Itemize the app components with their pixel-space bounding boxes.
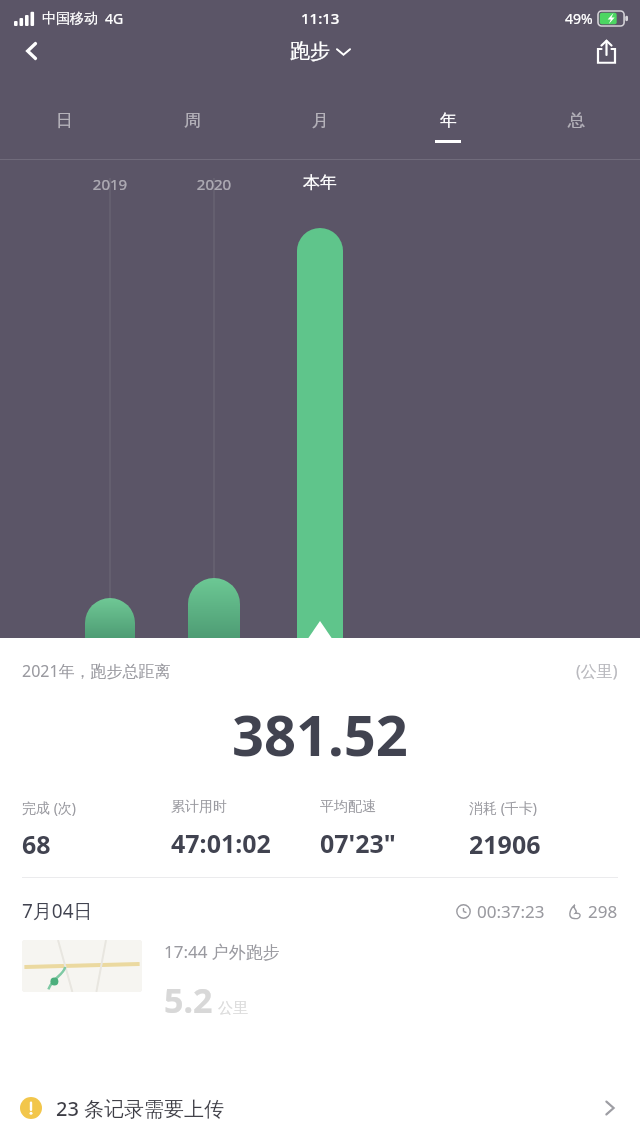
button[interactable]: 23 条记录需要上传 [0, 1078, 640, 1138]
staticText: 2020 [174, 174, 254, 194]
staticText: 累计用时 [171, 798, 227, 816]
staticText: 381.52 [232, 696, 408, 772]
staticText: 中国移动 [42, 10, 98, 28]
staticText: 年 [440, 110, 457, 131]
staticText: 4G [105, 9, 124, 28]
staticText: 23 条记录需要上传 [56, 1095, 225, 1122]
button[interactable]: 周 [128, 102, 256, 160]
staticText: (公里) [576, 660, 618, 682]
button[interactable]: 跑步 [290, 39, 350, 64]
staticText: 47:01:02 [171, 826, 271, 860]
staticText: 49% [565, 9, 593, 28]
staticText: 总 [568, 110, 585, 131]
staticText: 完成 (次) [22, 798, 77, 817]
staticText: 5.2 [164, 977, 213, 1023]
staticText: 平均配速 [320, 798, 376, 816]
button[interactable]: 年 [384, 102, 512, 160]
staticText: 消耗 (千卡) [469, 798, 538, 817]
staticText: 日 [56, 110, 73, 131]
staticText: 11:13 [301, 8, 340, 28]
staticText: 07'23" [320, 826, 396, 860]
button[interactable]: 日 [0, 102, 128, 160]
staticText: 跑步 [290, 39, 330, 64]
staticText: 17:44 户外跑步 [164, 940, 280, 963]
button[interactable]: 月 [256, 102, 384, 160]
staticText: 月 [312, 110, 329, 131]
staticText: 21906 [469, 827, 541, 861]
button[interactable]: 总 [512, 102, 640, 160]
staticText: 周 [184, 110, 201, 131]
staticText: 298 [588, 900, 618, 923]
staticText: 68 [22, 827, 51, 861]
button[interactable]: Share [582, 36, 630, 66]
staticText: 本年 [280, 172, 360, 193]
staticText: 2021年，跑步总距离 [22, 660, 171, 682]
staticText: 2019 [70, 174, 150, 194]
staticText: 公里 [218, 999, 248, 1018]
button[interactable]: 17:44 户外跑步 [22, 940, 618, 1023]
button[interactable]: Back [8, 36, 56, 66]
staticText: 00:37:23 [477, 900, 545, 923]
staticText: 7月04日 [22, 898, 93, 924]
